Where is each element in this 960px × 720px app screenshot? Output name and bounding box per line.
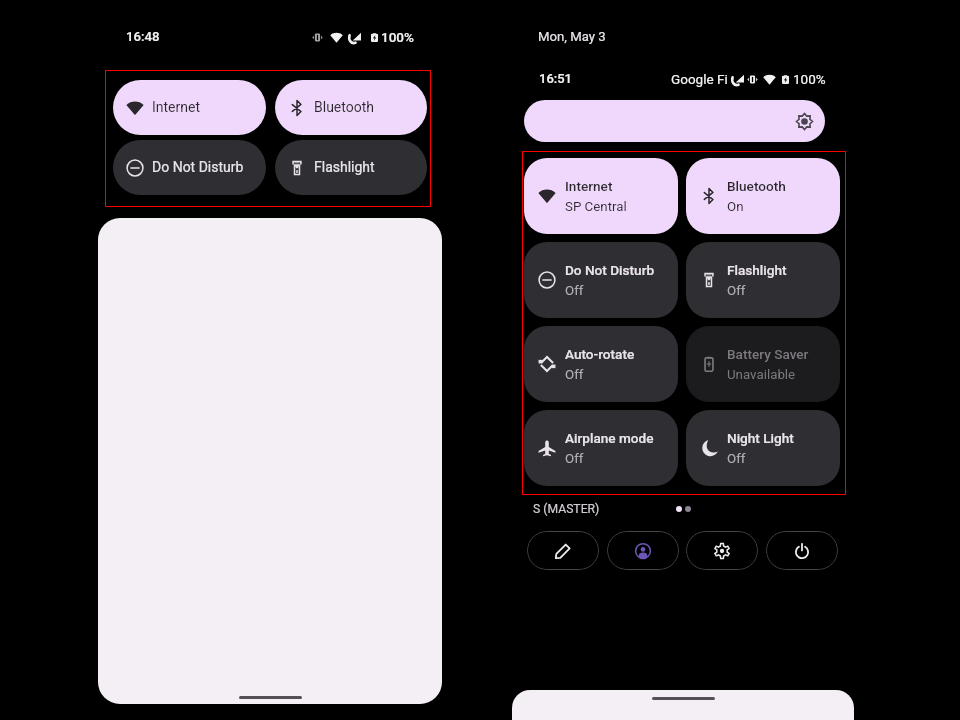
button[interactable]: Airplane mode [524, 410, 678, 486]
staticText: Off [565, 451, 584, 467]
staticText: Flashlight [727, 262, 787, 278]
staticText: 16:51 [539, 71, 572, 86]
staticText: Google Fi [671, 71, 728, 87]
button[interactable]: Flashlight [686, 242, 840, 318]
button[interactable]: Internet [113, 80, 266, 135]
staticText: Flashlight [314, 159, 375, 175]
staticText: Airplane mode [565, 430, 654, 446]
button[interactable]: Bluetooth [686, 158, 840, 234]
staticText: 100% [381, 29, 414, 45]
staticText: 16:48 [126, 29, 160, 44]
button[interactable]: Power [766, 531, 838, 570]
staticText: Off [727, 283, 746, 299]
staticText: Bluetooth [314, 99, 374, 115]
staticText: Off [565, 283, 584, 299]
button[interactable]: Night Light [686, 410, 840, 486]
staticText: S (MASTER) [533, 502, 600, 516]
staticText: Unavailable [727, 367, 796, 383]
staticText: Mon, May 3 [538, 29, 606, 44]
button[interactable]: Bluetooth [275, 80, 427, 135]
staticText: SP Central [565, 199, 627, 215]
staticText: Night Light [727, 430, 794, 446]
button[interactable]: Battery Saver [686, 326, 840, 402]
staticText: Internet [152, 99, 201, 115]
staticText: Off [565, 367, 584, 383]
button[interactable]: Do Not Disturb [524, 242, 678, 318]
staticText: Internet [565, 178, 613, 194]
button[interactable]: Edit tiles [527, 531, 599, 570]
staticText: Do Not Disturb [565, 262, 655, 278]
button[interactable]: Settings [686, 531, 758, 570]
staticText: Auto-rotate [565, 346, 635, 362]
button[interactable]: Internet [524, 158, 678, 234]
staticText: Do Not Disturb [152, 159, 244, 175]
staticText: 100% [793, 71, 826, 87]
staticText: On [727, 199, 744, 215]
button[interactable]: Do Not Disturb [113, 140, 266, 195]
staticText: Bluetooth [727, 178, 786, 194]
button[interactable]: User [607, 531, 679, 570]
staticText: Battery Saver [727, 346, 809, 362]
button[interactable]: Brightness [524, 100, 825, 142]
button[interactable]: Flashlight [275, 140, 427, 195]
button[interactable]: Auto-rotate [524, 326, 678, 402]
staticText: Off [727, 451, 746, 467]
